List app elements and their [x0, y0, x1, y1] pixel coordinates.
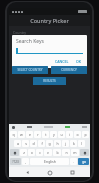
staticText: Country Picker [30, 17, 69, 24]
button[interactable]: m [71, 149, 79, 156]
button[interactable]: Recents [68, 168, 77, 177]
button[interactable]: Back [23, 168, 32, 177]
staticText: j [65, 141, 66, 146]
staticText: f [41, 141, 43, 146]
button[interactable]: a [14, 140, 21, 147]
staticText: CANCEL [55, 59, 69, 64]
staticText: d [32, 141, 35, 146]
staticText: p [84, 132, 87, 137]
staticText: u [60, 132, 63, 137]
button[interactable]: go [78, 158, 89, 165]
button[interactable]: i [66, 131, 73, 138]
staticText: l [81, 141, 82, 146]
staticText: go [82, 160, 86, 164]
button[interactable]: ?123 [10, 158, 21, 165]
staticText: y [53, 132, 55, 137]
staticText: OK [76, 59, 81, 64]
staticText: Country [13, 30, 27, 35]
staticText: g [48, 141, 51, 146]
button[interactable]: SELECT COUNTRY [12, 66, 48, 74]
button[interactable]: d [30, 140, 37, 147]
staticText: r [37, 132, 39, 137]
staticText: a [17, 141, 19, 146]
staticText: b [56, 150, 59, 155]
staticText: SELECT COUNTRY [17, 68, 43, 72]
button[interactable]: OK [74, 58, 83, 65]
button[interactable]: b [53, 149, 61, 156]
staticText: o [76, 132, 79, 137]
staticText: . [73, 159, 74, 164]
button[interactable]: e [26, 131, 33, 138]
staticText: h [56, 141, 59, 146]
staticText: , [25, 159, 26, 164]
button[interactable]: x [28, 149, 35, 156]
staticText: q [12, 132, 15, 137]
staticText: s [25, 141, 27, 146]
staticText: CURRENCY [61, 68, 77, 72]
button[interactable]: CURRENCY [51, 66, 87, 74]
button[interactable]: g [46, 140, 53, 147]
button[interactable]: f [38, 140, 45, 147]
button[interactable]: h [54, 140, 61, 147]
button[interactable]: w [18, 131, 25, 138]
button[interactable]: . [70, 158, 77, 165]
staticText: Search Keys [16, 38, 44, 45]
staticText: m [73, 150, 77, 155]
button[interactable]: o [74, 131, 81, 138]
staticText: w [20, 132, 23, 137]
button[interactable]: t [42, 131, 49, 138]
button[interactable]: r [34, 131, 41, 138]
button[interactable]: English [30, 158, 69, 165]
staticText: English [44, 159, 56, 164]
button[interactable]: Home [45, 168, 54, 177]
staticText: Region [13, 47, 25, 52]
staticText: RESULTS [43, 79, 56, 83]
staticText: n [65, 150, 68, 155]
button[interactable]: q [10, 131, 17, 138]
staticText: e [29, 132, 31, 137]
button[interactable]: u [58, 131, 65, 138]
button[interactable]: y [50, 131, 57, 138]
button[interactable]: CANCEL [53, 58, 71, 65]
button[interactable]: s [22, 140, 29, 147]
button[interactable]: n [62, 149, 70, 156]
staticText: x [31, 150, 33, 155]
staticText: z [23, 150, 25, 155]
button[interactable]: j [62, 140, 69, 147]
button[interactable]: v [44, 149, 52, 156]
staticText: t [45, 132, 47, 137]
button[interactable]: c [36, 149, 43, 156]
button[interactable]: Shift [10, 149, 19, 156]
staticText: Select one [13, 37, 30, 42]
button[interactable]: z [20, 149, 27, 156]
button[interactable]: RESULTS [33, 77, 66, 85]
staticText: ?123 [12, 160, 19, 164]
staticText: c [39, 150, 41, 155]
button[interactable]: k [70, 140, 77, 147]
staticText: i [69, 132, 70, 137]
button[interactable]: p [82, 131, 89, 138]
button[interactable]: Shift [80, 149, 89, 156]
staticText: v [47, 150, 49, 155]
button[interactable]: l [78, 140, 85, 147]
button[interactable]: , [22, 158, 29, 165]
staticText: k [73, 141, 75, 146]
